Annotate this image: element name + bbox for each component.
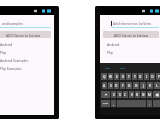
staticText: ADD Values to listview (6, 33, 41, 37)
staticText: ADD Values to listview (114, 33, 149, 37)
staticText: M (148, 93, 151, 97)
button[interactable]: T (126, 73, 131, 80)
staticText: H (135, 84, 138, 88)
staticText: J (143, 84, 144, 88)
staticText: D (115, 84, 118, 88)
staticText: andixamples (2, 21, 23, 26)
staticText: G (128, 84, 131, 88)
staticText: Android Examples (0, 58, 29, 62)
button[interactable]: K (147, 82, 153, 89)
button[interactable]: , (111, 100, 116, 107)
button[interactable]: And (115, 63, 130, 72)
button[interactable]: Php Examples (0, 64, 54, 72)
staticText: ?123 (103, 102, 108, 105)
button[interactable]: ?123 (101, 100, 110, 107)
staticText: Php (0, 50, 7, 54)
staticText: Y (134, 75, 136, 79)
button[interactable]: U (138, 73, 143, 80)
button[interactable]: Q (101, 73, 107, 80)
button[interactable]: Android (100, 40, 160, 48)
button[interactable]: D (114, 82, 119, 89)
button[interactable]: andixamples (0, 21, 51, 28)
button[interactable]: Php (100, 48, 160, 56)
button[interactable]: Y (132, 73, 137, 80)
button[interactable]: X (117, 91, 122, 98)
button[interactable]: Shift (101, 91, 110, 98)
button[interactable]: A (102, 82, 107, 89)
staticText: B (136, 93, 139, 97)
button[interactable]: Backspace (153, 91, 160, 98)
staticText: Android (0, 42, 13, 46)
button[interactable]: P (156, 73, 160, 80)
button[interactable]: M (147, 91, 152, 98)
button[interactable]: C (123, 91, 128, 98)
staticText: R (122, 75, 124, 79)
staticText: Add elementos listView (113, 21, 152, 26)
staticText: And (120, 66, 125, 69)
staticText: T (128, 75, 130, 79)
button[interactable]: . (147, 100, 152, 107)
button[interactable]: L (154, 82, 160, 89)
button[interactable]: I (144, 73, 149, 80)
staticText: A (103, 84, 106, 88)
staticText: Add (105, 66, 110, 69)
staticText: , (113, 102, 114, 106)
staticText: Php Examples (0, 66, 22, 70)
staticText: P (158, 75, 160, 79)
staticText: Php (107, 50, 114, 54)
staticText: Z (113, 93, 115, 97)
button[interactable]: N (141, 91, 146, 98)
button[interactable]: S (108, 82, 113, 89)
button[interactable]: Add (100, 63, 115, 72)
staticText: F (122, 84, 124, 88)
staticText: C (124, 93, 127, 97)
button[interactable]: Z (111, 91, 116, 98)
staticText: N (142, 93, 145, 97)
button[interactable]: O (150, 73, 155, 80)
staticText: K (149, 84, 151, 88)
staticText: W (109, 75, 112, 79)
staticText: Q (103, 75, 106, 79)
staticText: S (110, 84, 112, 88)
staticText: X (119, 93, 121, 97)
staticText: I (146, 75, 148, 79)
button[interactable]: Add elementos listView (111, 21, 159, 28)
button[interactable]: G (126, 82, 132, 89)
staticText: Android (107, 42, 120, 46)
staticText: O (151, 75, 154, 79)
staticText: U (139, 75, 142, 79)
button[interactable]: E (114, 73, 119, 80)
staticText: L (156, 84, 158, 88)
button[interactable]: Android (0, 40, 54, 48)
button[interactable]: J (140, 82, 146, 89)
button[interactable]: ADD Values to listview (0, 31, 51, 38)
button[interactable]: F (120, 82, 125, 89)
staticText: E (116, 75, 118, 79)
button[interactable]: ADD Values to listview (103, 31, 159, 38)
button[interactable]: B (135, 91, 140, 98)
button[interactable]: H (133, 82, 139, 89)
button[interactable]: V (129, 91, 134, 98)
button[interactable]: Php (0, 48, 54, 56)
button[interactable]: R (120, 73, 125, 80)
staticText: . (149, 102, 150, 106)
button[interactable]: Android Examples (0, 56, 54, 64)
staticText: V (131, 93, 133, 97)
button[interactable]: W (108, 73, 113, 80)
